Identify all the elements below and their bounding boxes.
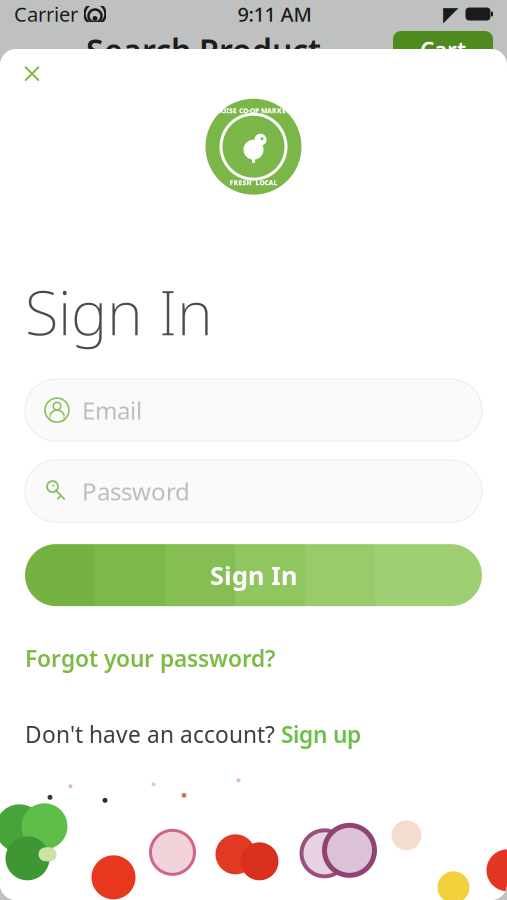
- staticText: 9:11 AM: [237, 1, 311, 27]
- staticText: Sign up: [281, 719, 361, 749]
- button[interactable]: Sign In: [25, 544, 482, 606]
- staticText: Don't have an account?: [25, 719, 281, 749]
- button[interactable]: Forgot your password?: [25, 639, 275, 677]
- staticText: Carrier: [14, 1, 78, 27]
- staticText: Sign In: [210, 558, 297, 592]
- staticText: Email: [82, 394, 142, 426]
- button[interactable]: Close: [10, 52, 54, 96]
- staticText: ◤: [443, 3, 458, 25]
- staticText: FRESH LOCAL: [229, 178, 277, 187]
- staticText: Forgot your password?: [25, 643, 275, 673]
- staticText: Search Product: [86, 29, 321, 71]
- button[interactable]: Sign up: [281, 719, 361, 749]
- staticText: Cart: [420, 35, 466, 65]
- staticText: BOISE CO-OP MARKET: [217, 106, 290, 115]
- staticText: Password: [82, 475, 190, 507]
- staticText: Sign In: [25, 271, 213, 352]
